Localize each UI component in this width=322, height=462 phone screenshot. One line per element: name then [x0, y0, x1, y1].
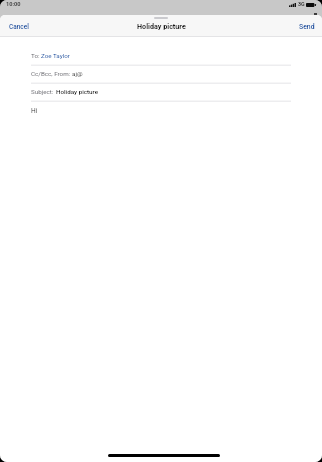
staticText: Subject:: [31, 88, 54, 95]
other: Battery: [306, 3, 316, 7]
button[interactable]: Subject:: [0, 82, 322, 100]
staticText: aj@: [72, 70, 83, 77]
staticText: To:: [31, 52, 40, 59]
button[interactable]: Cancel: [0, 20, 35, 34]
button[interactable]: Cc/Bcc, From:: [0, 64, 322, 82]
staticText: Cancel: [9, 23, 29, 31]
staticText: Hi: [31, 107, 38, 115]
button[interactable]: To:: [0, 46, 322, 64]
button[interactable]: Hi: [0, 100, 322, 130]
other: Cellular signal: [289, 3, 296, 7]
staticText: Cc/Bcc, From:: [31, 70, 71, 77]
staticText: 10:00: [6, 1, 21, 8]
staticText: Holiday picture: [56, 88, 99, 95]
button[interactable]: Send: [293, 20, 322, 34]
staticText: Send: [299, 23, 315, 31]
staticText: Holiday picture: [137, 22, 186, 30]
staticText: 3G: [298, 1, 305, 7]
staticText: Zoe Taylor: [41, 52, 70, 59]
